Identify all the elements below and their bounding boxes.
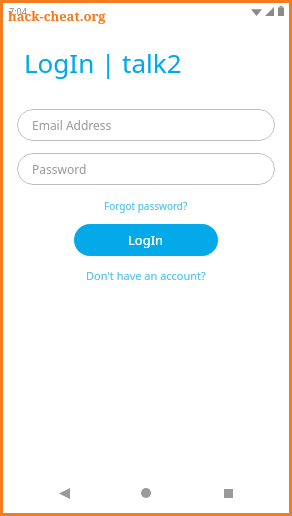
- staticText: Email Address: [32, 117, 112, 133]
- button[interactable]: Recent apps: [212, 477, 244, 509]
- staticText: Don't have an account?: [86, 268, 206, 283]
- staticText: 7:04: [9, 5, 27, 17]
- staticText: Password: [32, 161, 87, 177]
- button[interactable]: Home: [130, 477, 162, 509]
- button[interactable]: Forgot password?: [98, 197, 194, 215]
- staticText: LogIn: [128, 231, 164, 249]
- button[interactable]: Back: [48, 477, 80, 509]
- button[interactable]: LogIn: [74, 224, 218, 256]
- button[interactable]: Email Address: [17, 109, 275, 141]
- button[interactable]: Password: [17, 153, 275, 185]
- button[interactable]: Don't have an account?: [80, 266, 212, 285]
- staticText: LogIn | talk2: [24, 45, 182, 80]
- staticText: hack-cheat.org: [8, 7, 106, 25]
- staticText: Forgot password?: [104, 199, 188, 213]
